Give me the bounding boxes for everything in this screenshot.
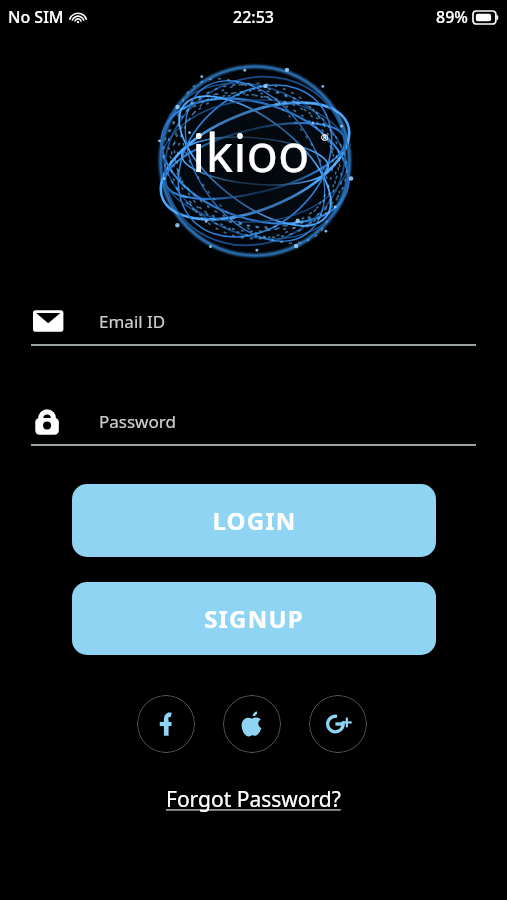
staticText: 22:53 [233,6,274,28]
staticText: ® [321,131,329,143]
staticText: LOGIN [212,504,297,537]
button[interactable]: Email [31,300,476,346]
button[interactable]: SIGNUP [72,582,436,655]
staticText: Email ID [99,310,166,333]
staticText: ikioo [192,116,310,187]
other: Password [33,406,71,436]
button[interactable]: Sign in with Google [309,695,367,753]
staticText: Forgot Password? [166,785,341,814]
button[interactable]: Password [31,400,476,446]
staticText: Password [99,410,176,433]
other: Email [33,306,71,336]
button[interactable]: LOGIN [72,484,436,557]
button[interactable]: Forgot Password? [158,781,349,818]
button[interactable]: Sign in with Facebook [137,695,195,753]
staticText: 89% [436,6,468,28]
staticText: SIGNUP [204,602,304,635]
button[interactable]: Sign in with Apple [223,695,281,753]
staticText: No SIM [8,6,64,28]
